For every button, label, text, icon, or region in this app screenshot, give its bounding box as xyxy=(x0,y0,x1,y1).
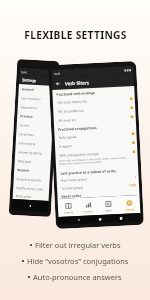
button[interactable]: With orthographic changes xyxy=(55,147,137,160)
staticText: English to Spanish xyxy=(17,177,42,182)
staticText: Infinitives & Translations xyxy=(19,141,52,147)
staticText: Shuffle rhyme order xyxy=(16,186,44,192)
button[interactable]: Practice xyxy=(58,198,78,217)
button[interactable]: Appearance xyxy=(17,102,54,113)
staticText: Settings xyxy=(22,77,36,83)
staticText: Irregular xyxy=(59,144,72,149)
staticText: Answer by typing xyxy=(18,150,42,155)
staticText: Short verbs xyxy=(16,194,32,199)
staticText: Reset verbs xyxy=(61,193,81,199)
button[interactable]: Fully regular xyxy=(54,129,137,142)
staticText: Last practice to a subset of verbs xyxy=(60,168,116,176)
staticText: Daily goal xyxy=(18,159,32,164)
button[interactable]: Progress xyxy=(78,197,98,216)
button[interactable]: Shuffle rhyme order xyxy=(13,183,49,194)
staticText: 1200 xyxy=(129,183,137,187)
button[interactable]: Irregular xyxy=(55,138,137,151)
staticText: Filter out irregular verbs xyxy=(35,240,121,250)
staticText: Practised conjugations xyxy=(58,125,97,132)
staticText: -AR: estar, hablar, etc. xyxy=(57,99,88,105)
button[interactable]: Infinitives & Translations xyxy=(15,138,52,149)
button[interactable]: Back xyxy=(54,80,61,87)
staticText: With orthographic changes xyxy=(59,152,99,158)
staticText: -IR: venir, etc. xyxy=(58,118,78,123)
button[interactable]: Answer by typing xyxy=(15,147,51,158)
button[interactable]: Settings xyxy=(118,195,140,214)
staticText: To verb ranked xyxy=(61,186,83,191)
staticText: Practice xyxy=(20,114,33,119)
staticText: Verb filters xyxy=(19,132,34,137)
staticText: Tenses xyxy=(20,123,30,128)
button[interactable]: To verb ranked xyxy=(57,181,139,193)
button[interactable]: Daily goal xyxy=(14,156,51,167)
button[interactable]: From rank ranked xyxy=(56,173,139,185)
button[interactable]: English to Spanish xyxy=(13,174,50,185)
staticText: 1 xyxy=(134,175,137,179)
staticText: Rhythm xyxy=(17,168,30,173)
staticText: 10:45 xyxy=(53,72,61,76)
staticText: Verb filters xyxy=(65,79,90,86)
button[interactable]: Tenses xyxy=(16,120,53,131)
staticText: Practised verb endings xyxy=(56,90,96,97)
staticText: Appearance xyxy=(21,105,38,110)
staticText: Auto-pronounce answers xyxy=(33,272,122,282)
staticText: Hide “vosotros” conjugations xyxy=(27,256,129,266)
staticText: 10:45 xyxy=(21,70,28,74)
staticText: Progress xyxy=(83,209,93,213)
staticText: From rank ranked xyxy=(61,177,87,183)
staticText: Practice xyxy=(64,210,73,214)
staticText: Use “vosotros” xyxy=(21,96,41,101)
staticText: -ER: ser, poder, etc. xyxy=(57,108,84,114)
button[interactable]: -IR: venir, etc. xyxy=(53,112,136,125)
button[interactable]: -ER: ser, poder, etc. xyxy=(53,103,135,116)
button[interactable]: Verb filters xyxy=(16,129,52,140)
staticText: Some verbs are irregular in only certain… xyxy=(59,156,133,166)
staticText: General xyxy=(22,87,35,92)
staticText: Settings xyxy=(125,207,135,211)
button[interactable]: Short verbs xyxy=(13,192,49,201)
staticText: FLEXIBLE SETTINGS xyxy=(24,28,127,42)
button[interactable]: -AR: estar, hablar, etc. xyxy=(53,94,135,107)
button[interactable]: Use “vosotros” xyxy=(18,93,54,104)
staticText: Verbs xyxy=(105,208,112,212)
staticText: Fully regular xyxy=(58,135,78,140)
button[interactable]: Verbs xyxy=(97,196,119,215)
